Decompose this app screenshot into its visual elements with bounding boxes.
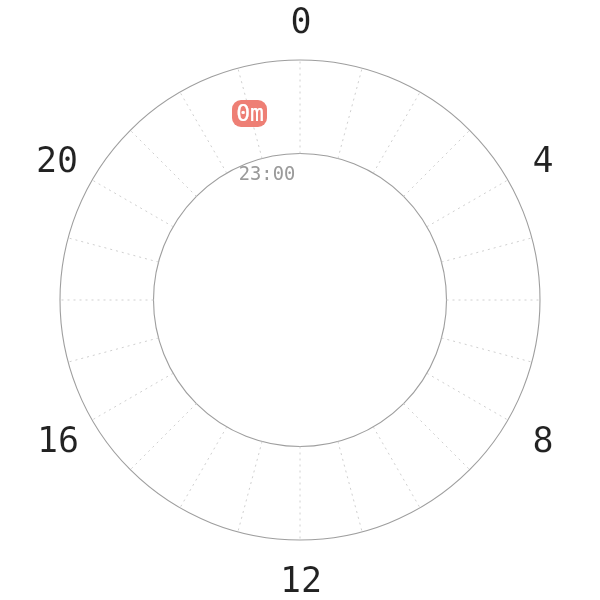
staticText: 0m (236, 100, 264, 127)
staticText: 20 (0, 140, 147, 181)
staticText: 16 (0, 420, 148, 461)
staticText: 12 (211, 560, 391, 600)
staticText: 23:00 (177, 163, 357, 185)
staticText: 0 (211, 1, 391, 42)
button[interactable]: 0 minutes logged at 23:00 (232, 100, 267, 127)
staticText: 8 (453, 420, 600, 461)
staticText: 4 (453, 140, 600, 181)
